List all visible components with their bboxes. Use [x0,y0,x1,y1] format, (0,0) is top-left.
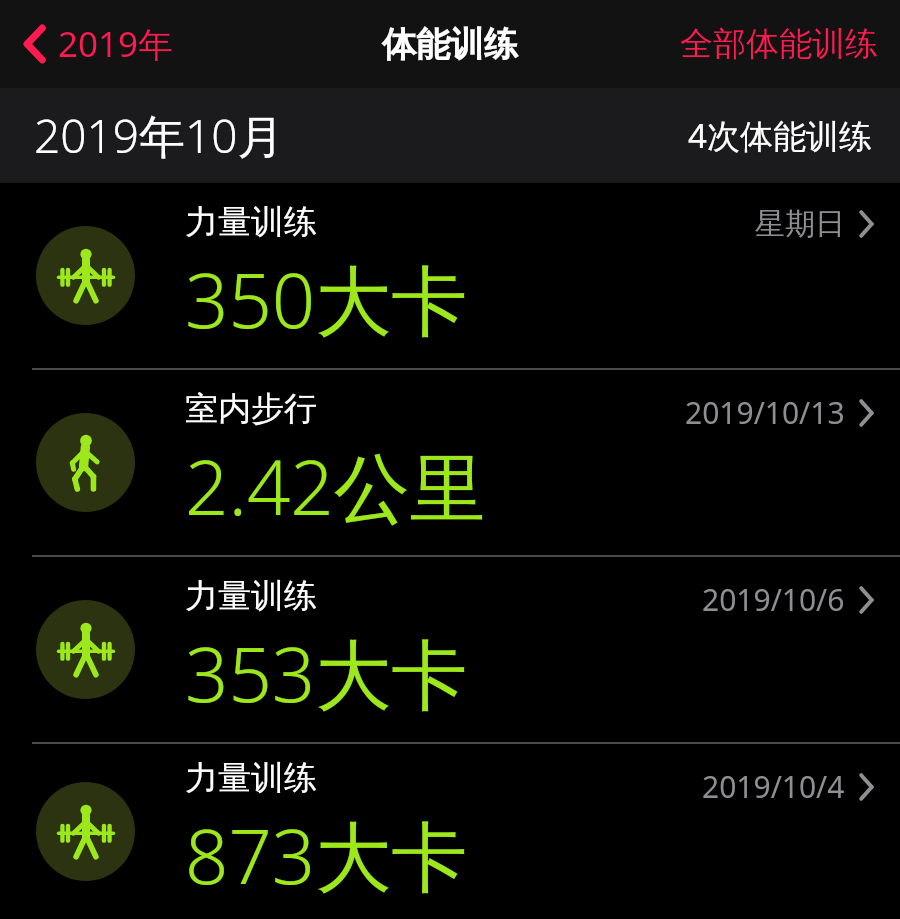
staticText: 2019年10月 [34,104,284,167]
staticText: 星期日 [755,205,845,243]
button[interactable]: Back [22,20,174,68]
staticText: 力量训练 [185,201,317,243]
staticText: 353大卡 [185,621,468,725]
staticText: 2019/10/6 [702,579,845,620]
staticText: 2019/10/13 [685,392,845,433]
staticText: 2019/10/4 [702,766,845,807]
button[interactable]: 力量训练 [0,557,900,742]
staticText: 4次体能训练 [688,113,872,158]
staticText: 力量训练 [185,575,317,617]
other: Back [22,23,48,65]
staticText: 2.42公里 [185,434,486,538]
staticText: 力量训练 [185,757,317,799]
staticText: 350大卡 [185,247,468,351]
staticText: 873大卡 [185,803,468,907]
staticText: 体能训练 [382,23,518,66]
button[interactable]: 力量训练 [0,183,900,368]
staticText: 全部体能训练 [680,23,878,65]
staticText: 2019年 [58,20,174,68]
staticText: 室内步行 [185,388,317,430]
button[interactable]: 室内步行 [0,370,900,555]
button[interactable]: 全部体能训练 [680,23,900,65]
button[interactable]: 力量训练 [0,744,900,919]
